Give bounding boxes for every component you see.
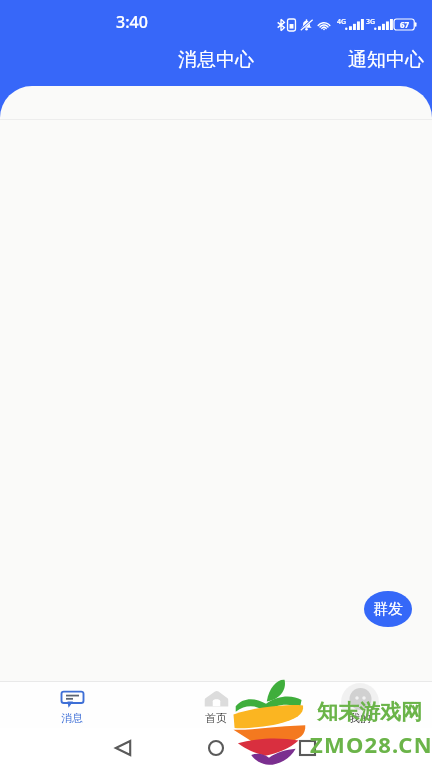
staticText: 首页 bbox=[205, 711, 227, 725]
staticText: 3:40 bbox=[116, 11, 148, 33]
staticText: 67 bbox=[400, 19, 410, 30]
staticText: 消息 bbox=[61, 711, 83, 725]
staticText: 3G bbox=[366, 17, 376, 27]
button[interactable]: Home bbox=[196, 728, 236, 768]
staticText: ZMO28.CN bbox=[310, 729, 432, 759]
button[interactable]: Recent apps bbox=[287, 728, 327, 768]
button[interactable]: 通知中心 bbox=[336, 42, 432, 78]
button[interactable]: 群发 bbox=[364, 591, 412, 627]
staticText: 群发 bbox=[373, 600, 403, 619]
button[interactable]: 首页 bbox=[144, 682, 288, 728]
staticText: 4G bbox=[337, 17, 347, 27]
staticText: 通知中心 bbox=[348, 48, 424, 72]
button[interactable]: 我的 bbox=[288, 682, 432, 728]
button[interactable]: 消息 bbox=[0, 682, 144, 728]
button[interactable]: Back bbox=[103, 728, 143, 768]
staticText: 我的 bbox=[349, 711, 371, 725]
staticText: 消息中心 bbox=[178, 48, 254, 72]
staticText: 知末游戏网 bbox=[317, 699, 422, 725]
